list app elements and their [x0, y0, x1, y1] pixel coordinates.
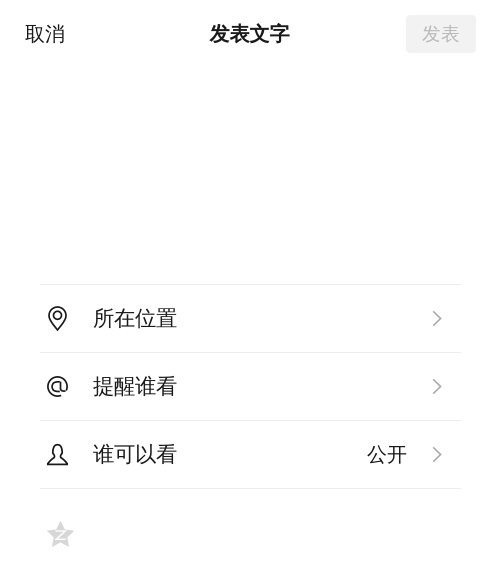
staticText: 发表文字: [209, 22, 289, 46]
staticText: 提醒谁看: [93, 373, 177, 400]
button[interactable]: 所在位置: [0, 285, 499, 352]
button[interactable]: 发表: [406, 15, 476, 53]
staticText: 取消: [25, 22, 65, 46]
staticText: 所在位置: [93, 305, 177, 332]
staticText: 谁可以看: [93, 441, 177, 468]
button[interactable]: 谁可以看: [0, 421, 499, 488]
button[interactable]: 取消: [0, 8, 81, 60]
staticText: 发表: [422, 22, 460, 45]
button[interactable]: 提醒谁看: [0, 353, 499, 420]
staticText: 公开: [367, 442, 407, 467]
